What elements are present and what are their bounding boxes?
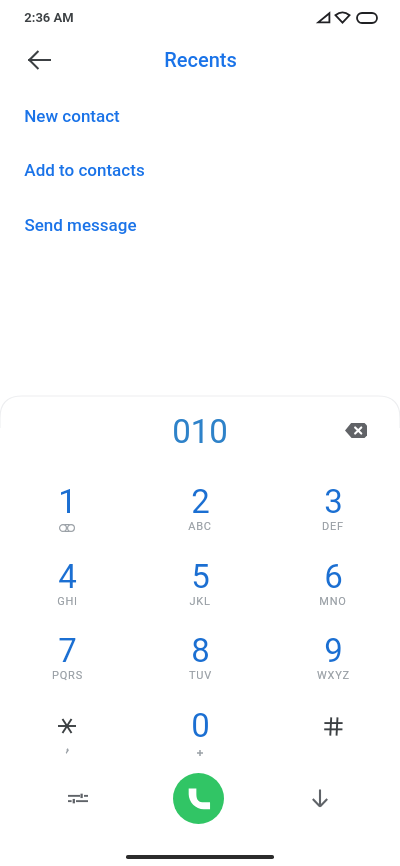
staticText: PQRS [52, 669, 83, 682]
button[interactable]: Back [15, 36, 62, 83]
button[interactable]: Hide dialpad [296, 774, 344, 822]
button[interactable]: 1 [17, 477, 117, 547]
button[interactable]: Send message [0, 205, 400, 245]
staticText: New contact [24, 106, 120, 126]
staticText: GHI [57, 595, 78, 608]
button[interactable]: Dialpad options [54, 774, 102, 822]
staticText: 2:36 AM [24, 10, 74, 25]
staticText: TUV [189, 669, 212, 682]
button[interactable] [283, 701, 383, 771]
staticText: JKL [189, 595, 211, 608]
staticText: 6 [324, 557, 343, 596]
staticText: Send message [24, 215, 137, 235]
staticText: Add to contacts [24, 160, 145, 180]
staticText: 9 [324, 631, 343, 670]
button[interactable]: Call [173, 773, 224, 824]
button[interactable]: New contact [0, 96, 400, 136]
staticText: 010 [172, 412, 228, 451]
staticText: 4 [58, 557, 77, 596]
button[interactable] [17, 701, 117, 771]
staticText: Recents [164, 48, 237, 71]
button[interactable]: 7 [17, 626, 117, 696]
staticText: 1 [58, 482, 77, 521]
staticText: 5 [191, 557, 210, 596]
button[interactable]: 2 [150, 477, 250, 547]
staticText: WXYZ [317, 669, 350, 682]
button[interactable]: 3 [283, 477, 383, 547]
button[interactable]: 4 [17, 552, 117, 622]
staticText: 3 [324, 482, 343, 521]
button[interactable]: 6 [283, 552, 383, 622]
button[interactable]: Backspace [334, 408, 378, 452]
button[interactable]: 8 [150, 626, 250, 696]
staticText: ABC [188, 520, 212, 533]
button[interactable]: 0 [150, 701, 250, 771]
staticText: 7 [58, 631, 77, 670]
staticText: DEF [322, 520, 344, 533]
button[interactable]: 9 [283, 626, 383, 696]
staticText: 2 [191, 482, 210, 521]
staticText: 8 [191, 631, 210, 670]
button[interactable]: 5 [150, 552, 250, 622]
staticText: 0 [191, 706, 210, 745]
staticText: MNO [319, 595, 347, 608]
button[interactable]: Add to contacts [0, 150, 400, 190]
